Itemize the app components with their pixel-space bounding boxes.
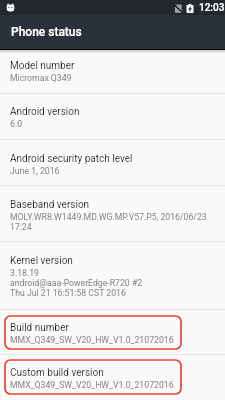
staticText: Phone status xyxy=(11,25,82,39)
staticText: Custom build version xyxy=(10,367,104,379)
button[interactable]: Model number xyxy=(0,50,225,94)
button[interactable]: Build number xyxy=(0,310,225,355)
button[interactable]: Baseband version xyxy=(0,186,225,242)
staticText: Build number xyxy=(10,322,69,334)
button[interactable]: Android version xyxy=(0,94,225,140)
staticText: Android version xyxy=(10,106,80,118)
staticText: android@aaa-PowerEdge-R720 #2 xyxy=(10,278,143,288)
button[interactable]: Android security patch level xyxy=(0,140,225,186)
staticText: June 1, 2016 xyxy=(10,166,60,176)
staticText: MMX_Q349_SW_V20_HW_V1.0_21072016 xyxy=(10,380,174,390)
other: No signal xyxy=(173,4,183,13)
staticText: Micromax Q349 xyxy=(10,73,72,83)
staticText: Thu Jul 21 16:51:58 CST 2016 xyxy=(10,288,126,298)
staticText: Model number xyxy=(10,60,75,72)
button[interactable]: Kernel version xyxy=(0,242,225,310)
staticText: Kernel version xyxy=(10,255,73,267)
staticText: Android security patch level xyxy=(10,153,133,165)
staticText: 12:03 xyxy=(199,2,225,14)
staticText: Baseband version xyxy=(10,199,90,211)
button[interactable]: Custom build version xyxy=(0,355,225,400)
staticText: 17:24 xyxy=(10,222,32,232)
staticText: MMX_Q349_SW_V20_HW_V1.0_21072016 xyxy=(10,335,174,345)
other: Notification xyxy=(6,3,15,12)
staticText: MOLY.WR8.W1449.MD.WG.MP.V57.P5, 2016/06/… xyxy=(10,212,207,222)
button[interactable]: Phone status xyxy=(0,15,225,49)
staticText: 3.18.19 xyxy=(10,268,39,278)
staticText: 6.0 xyxy=(10,119,23,129)
